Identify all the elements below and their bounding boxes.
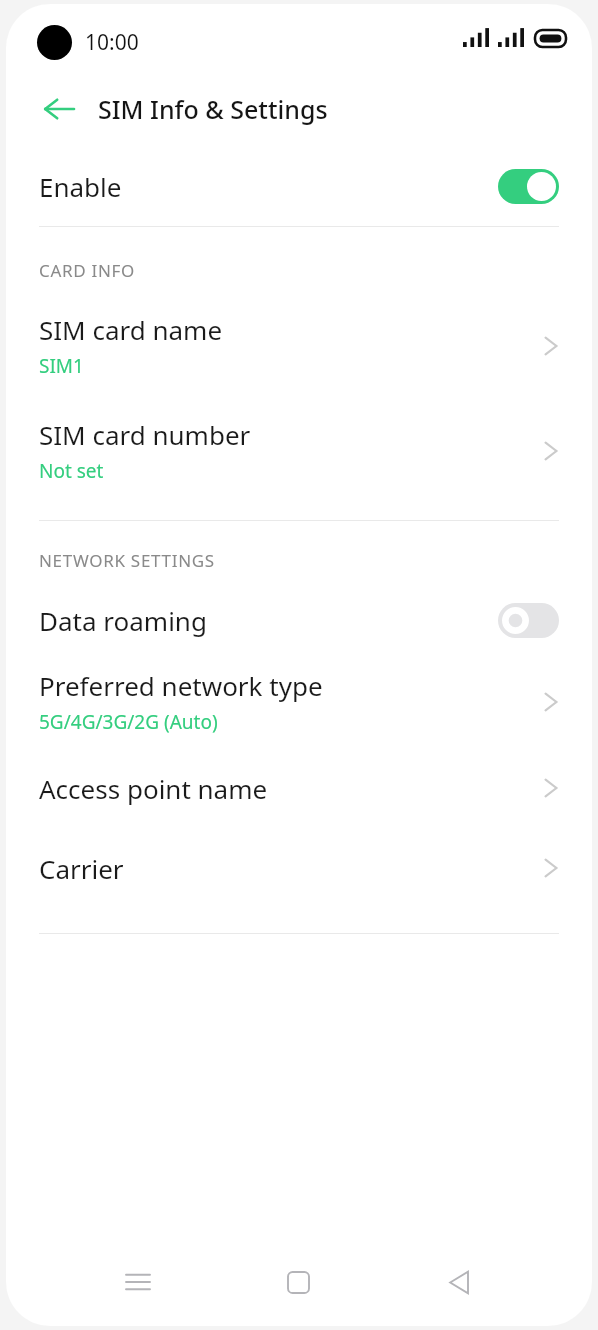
button[interactable]: Carrier [6, 843, 592, 893]
staticText: Not set [39, 458, 104, 484]
staticText: Carrier [39, 851, 543, 886]
staticText: 10:00 [85, 28, 139, 57]
button[interactable]: Home [270, 1254, 326, 1310]
staticText: Enable [39, 169, 498, 204]
button[interactable]: Enable [6, 158, 592, 214]
button[interactable]: Recent apps [110, 1254, 166, 1310]
button[interactable]: Preferred network type [6, 668, 592, 735]
button[interactable]: Data roaming [6, 592, 592, 648]
staticText: Data roaming [39, 603, 498, 638]
button[interactable]: Back [431, 1254, 487, 1310]
button[interactable]: Back [36, 86, 82, 132]
staticText: Preferred network type [39, 668, 323, 703]
staticText: SIM Info & Settings [98, 92, 328, 126]
staticText: Access point name [39, 771, 543, 806]
button[interactable]: SIM card name [6, 312, 592, 379]
staticText: NETWORK SETTINGS [39, 549, 215, 572]
staticText: SIM card number [39, 417, 251, 452]
button[interactable]: Enable toggle [498, 169, 559, 204]
staticText: SIM card name [39, 312, 223, 347]
button[interactable]: Data roaming toggle [498, 603, 559, 638]
staticText: 5G/4G/3G/2G (Auto) [39, 709, 218, 735]
staticText: SIM1 [39, 353, 84, 379]
staticText: CARD INFO [39, 259, 136, 282]
button[interactable]: SIM card number [6, 417, 592, 484]
button[interactable]: Access point name [6, 763, 592, 813]
